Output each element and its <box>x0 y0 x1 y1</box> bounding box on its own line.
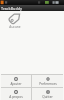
staticText: Aucune <box>9 25 21 29</box>
button[interactable]: Preferences <box>32 75 63 87</box>
button[interactable]: Add <box>1 75 31 87</box>
staticText: Ajouter <box>10 82 22 86</box>
staticText: Preferences <box>39 82 57 86</box>
staticText: A propos <box>9 95 23 99</box>
staticText: Quitter <box>42 95 53 99</box>
button[interactable]: About <box>1 88 31 100</box>
staticText: TrackBuddy <box>1 6 22 11</box>
button[interactable]: Quit <box>32 88 63 100</box>
